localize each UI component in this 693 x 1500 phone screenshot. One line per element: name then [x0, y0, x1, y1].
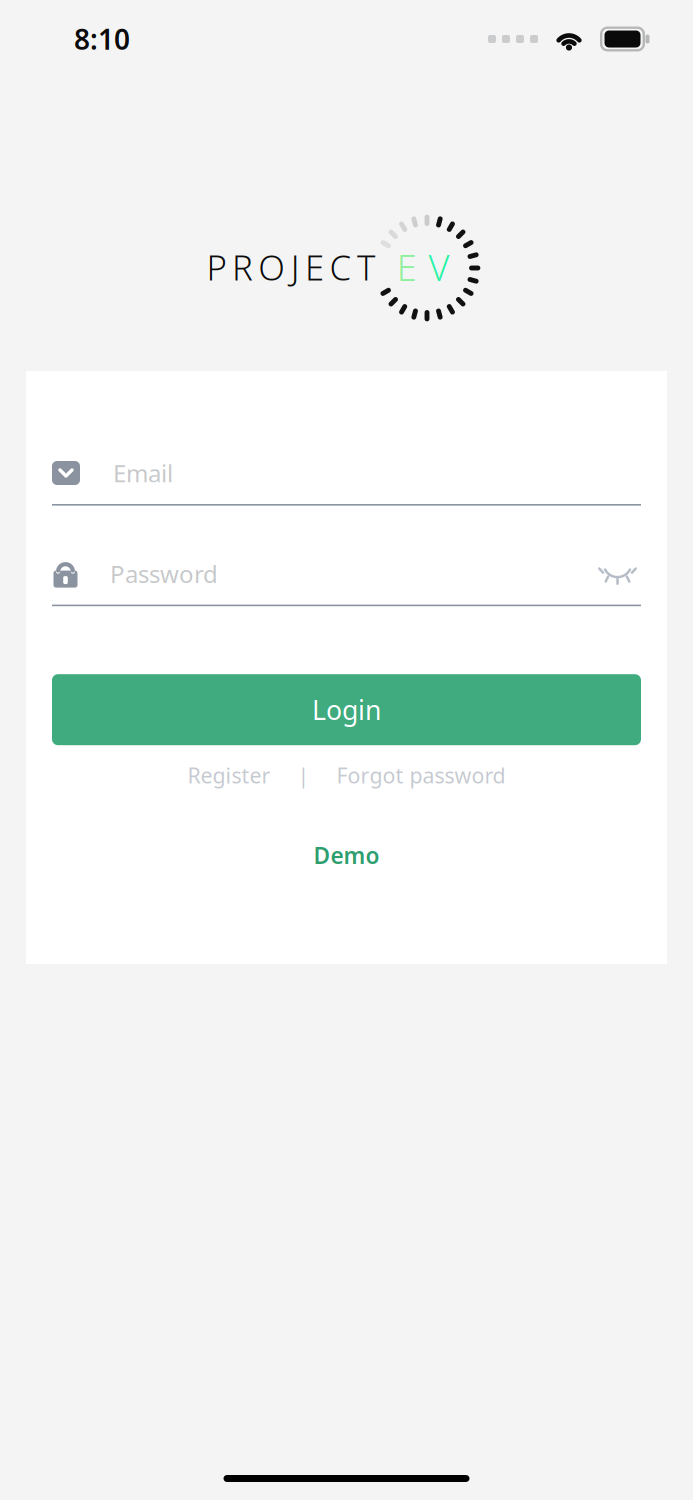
button[interactable]: Forgot password [336, 755, 505, 795]
staticText: J [291, 244, 300, 290]
button[interactable]: Register [187, 755, 270, 795]
staticText: Demo [313, 840, 379, 870]
staticText: T [357, 244, 375, 290]
button[interactable]: Login [52, 674, 641, 745]
staticText: O [258, 244, 285, 290]
button[interactable]: Show password [594, 555, 641, 593]
staticText: 8:10 [74, 20, 130, 58]
staticText: Register [187, 761, 270, 789]
staticText: Email [113, 457, 173, 489]
staticText: E [305, 244, 324, 290]
staticText: | [297, 761, 309, 789]
staticText: Password [110, 558, 218, 590]
staticText: R [232, 244, 253, 290]
staticText: C [329, 244, 351, 290]
staticText: V [428, 243, 449, 291]
button[interactable]: Demo [301, 834, 391, 876]
staticText: P [206, 244, 226, 290]
staticText: Forgot password [336, 761, 505, 789]
staticText: E [397, 243, 417, 291]
staticText: Login [312, 692, 381, 727]
